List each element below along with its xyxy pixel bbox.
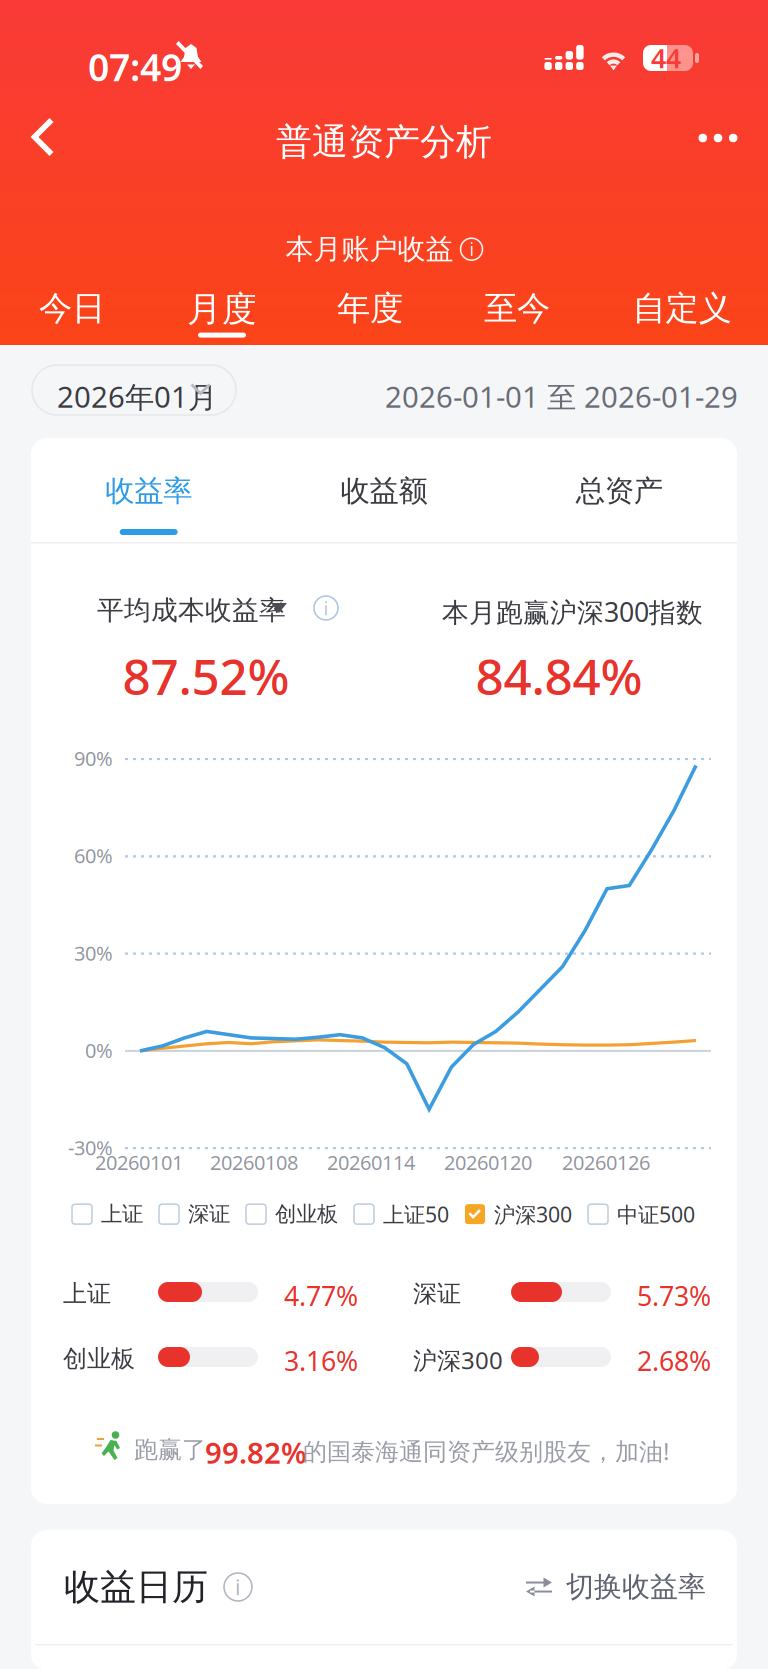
button[interactable]: 总资产 — [502, 438, 737, 542]
button[interactable]: Back — [0, 94, 85, 180]
staticText: 收益率 — [105, 473, 192, 509]
staticText: 今日 — [39, 288, 105, 329]
staticText: 自定义 — [632, 288, 731, 329]
staticText: 本月账户收益 — [285, 232, 453, 266]
staticText: 5.73% — [637, 1278, 711, 1313]
staticText: i — [323, 596, 328, 620]
staticText: 20260126 — [562, 1149, 650, 1176]
staticText: i — [235, 1573, 241, 1601]
button[interactable]: 沪深300 — [31, 1278, 737, 1308]
button[interactable]: 月度 — [0, 288, 150, 340]
button[interactable]: More — [675, 99, 761, 177]
staticText: 87.52% — [122, 643, 289, 708]
button[interactable]: 深证 — [159, 1201, 230, 1227]
button[interactable]: 2026年01月 — [32, 365, 236, 415]
staticText: 2026-01-01 至 2026-01-29 — [385, 377, 738, 416]
staticText: 深证 — [188, 1201, 230, 1227]
button[interactable]: 中证500 — [588, 1200, 695, 1228]
staticText: 月度 — [187, 288, 257, 331]
staticText: 创业板 — [275, 1201, 338, 1227]
staticText: 20260120 — [444, 1149, 532, 1176]
button[interactable]: 上证50 — [354, 1200, 449, 1228]
staticText: 0% — [85, 1037, 113, 1063]
staticText: 90% — [74, 745, 113, 772]
staticText: 3.16% — [284, 1343, 358, 1378]
staticText: 跑赢了 — [134, 1435, 206, 1464]
button[interactable]: 自定义 — [0, 288, 150, 340]
staticText: 84.84% — [475, 643, 642, 708]
button[interactable]: 上证 — [72, 1201, 143, 1227]
button[interactable]: 今日 — [0, 288, 150, 340]
button[interactable]: 切换收益率 — [526, 1570, 706, 1604]
button[interactable]: 创业板 — [246, 1201, 338, 1227]
staticText: i — [469, 238, 473, 261]
button[interactable]: 年度 — [0, 288, 150, 340]
button[interactable]: 至今 — [0, 288, 150, 340]
staticText: 的国泰海通同资产级别股友，加油! — [303, 1435, 669, 1467]
staticText: 中证500 — [617, 1200, 695, 1228]
staticText: 深证 — [413, 1279, 461, 1308]
staticText: 沪深300 — [494, 1200, 572, 1228]
staticText: 2.68% — [637, 1343, 711, 1378]
staticText: -30% — [68, 1134, 113, 1161]
staticText: 60% — [74, 842, 113, 869]
staticText: 平均成本收益率 — [97, 594, 286, 627]
staticText: 收益额 — [340, 473, 427, 509]
staticText: 4.77% — [284, 1278, 358, 1313]
staticText: 20260114 — [327, 1149, 415, 1176]
staticText: 2026年01月 — [57, 377, 217, 416]
staticText: 20260108 — [210, 1149, 298, 1176]
staticText: 上证 — [63, 1279, 111, 1308]
staticText: 上证50 — [383, 1200, 449, 1228]
staticText: 总资产 — [576, 473, 663, 509]
staticText: 收益日历 — [64, 1565, 208, 1609]
staticText: 07:49 — [88, 42, 182, 92]
staticText: 切换收益率 — [566, 1570, 706, 1604]
staticText: 上证 — [101, 1201, 143, 1227]
staticText: 44 — [651, 40, 681, 76]
staticText: 沪深300 — [413, 1344, 503, 1376]
button[interactable]: 沪深300 — [465, 1200, 572, 1228]
button[interactable]: 深证 — [31, 1278, 737, 1308]
staticText: 20260101 — [95, 1149, 183, 1176]
staticText: 创业板 — [63, 1344, 135, 1373]
button[interactable]: 收益额 — [266, 438, 502, 542]
staticText: 99.82% — [205, 1433, 307, 1472]
staticText: 30% — [74, 940, 113, 966]
button[interactable]: 上证 — [31, 1278, 737, 1308]
button[interactable]: 收益率 — [31, 438, 266, 542]
staticText: 年度 — [337, 288, 403, 329]
staticText: 至今 — [484, 288, 550, 329]
button[interactable]: 创业板 — [31, 1278, 737, 1308]
staticText: 本月跑赢沪深300指数 — [442, 594, 703, 629]
staticText: 普通资产分析 — [276, 120, 492, 164]
